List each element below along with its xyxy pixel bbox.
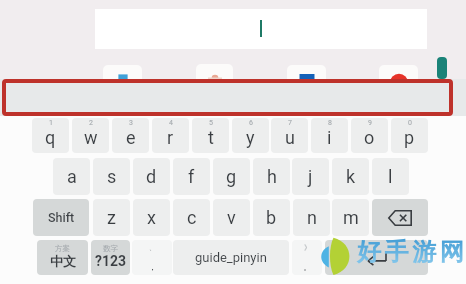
button[interactable]: h (253, 158, 290, 195)
button[interactable]: 、 (132, 240, 172, 275)
staticText: e (126, 127, 136, 148)
staticText: m (343, 207, 359, 228)
staticText: i (327, 127, 332, 148)
staticText: ， (148, 261, 157, 272)
staticText: 》 (304, 243, 311, 252)
button[interactable] (325, 240, 428, 275)
staticText: h (267, 166, 277, 187)
button[interactable]: g (213, 158, 250, 195)
button[interactable]: x (133, 199, 170, 236)
staticText: f (188, 166, 195, 187)
button[interactable]: s (93, 158, 130, 195)
staticText: l (388, 166, 393, 187)
button[interactable]: App 4 (379, 65, 418, 83)
button[interactable]: Backspace (372, 199, 428, 236)
button[interactable]: j (292, 158, 329, 195)
staticText: s (107, 166, 117, 187)
staticText: u (285, 127, 295, 148)
staticText: y (246, 127, 255, 148)
staticText: 、 (149, 243, 156, 252)
button[interactable]: v (213, 199, 250, 236)
staticText: 8 (328, 119, 332, 127)
button[interactable]: App 2 (196, 64, 233, 82)
button[interactable]: k (332, 158, 369, 195)
staticText: 7 (288, 119, 292, 127)
button[interactable]: a (53, 158, 90, 195)
button[interactable]: App 1 (103, 65, 142, 83)
button[interactable]: 8 (311, 118, 348, 153)
staticText: 9 (368, 119, 372, 127)
staticText: 5 (209, 119, 213, 127)
staticText: ?123 (95, 253, 127, 269)
staticText: 3 (129, 119, 133, 127)
button[interactable]: f (173, 158, 210, 195)
staticText: 数字 (103, 244, 118, 253)
staticText: o (364, 127, 375, 148)
button[interactable]: n (293, 199, 330, 236)
button[interactable]: 数字 (91, 240, 130, 275)
staticText: t (208, 127, 214, 148)
staticText: n (307, 207, 317, 228)
button[interactable]: 0 (391, 118, 428, 153)
staticText: g (226, 166, 237, 187)
button[interactable]: 方案 (37, 240, 88, 275)
staticText: p (404, 127, 415, 148)
button[interactable]: z (93, 199, 130, 236)
button[interactable]: l (372, 158, 409, 195)
staticText: c (187, 207, 197, 228)
button[interactable]: 6 (232, 118, 269, 153)
staticText: 。 (303, 261, 312, 272)
button[interactable]: App 3 (287, 65, 326, 83)
staticText: 4 (169, 119, 173, 127)
button[interactable]: m (332, 199, 369, 236)
button[interactable]: guide_pinyin (173, 240, 289, 275)
staticText: guide_pinyin (195, 250, 267, 265)
staticText: 2 (89, 119, 93, 127)
staticText: z (107, 207, 116, 228)
button[interactable]: 1 (32, 118, 69, 153)
button[interactable]: 》 (292, 240, 322, 275)
button[interactable]: 2 (72, 118, 109, 153)
button[interactable]: 9 (351, 118, 388, 153)
staticText: q (45, 127, 56, 148)
staticText: 1 (49, 119, 53, 127)
button[interactable]: 3 (112, 118, 149, 153)
button[interactable]: 5 (192, 118, 229, 153)
staticText: k (346, 166, 356, 187)
button[interactable]: 7 (271, 118, 308, 153)
button[interactable]: Shift (33, 199, 89, 236)
staticText: Shift (48, 210, 75, 225)
staticText: x (147, 207, 156, 228)
button[interactable] (0, 79, 466, 116)
staticText: w (84, 127, 98, 148)
button[interactable]: 4 (152, 118, 189, 153)
button[interactable] (95, 9, 427, 49)
staticText: v (227, 207, 236, 228)
staticText: 中文 (50, 253, 76, 269)
staticText: 6 (249, 119, 253, 127)
staticText: b (266, 207, 277, 228)
button[interactable]: d (133, 158, 170, 195)
staticText: d (146, 166, 157, 187)
staticText: 好手游网 (357, 237, 466, 267)
staticText: j (308, 166, 313, 187)
button[interactable]: b (253, 199, 290, 236)
staticText: a (67, 166, 77, 187)
staticText: 方案 (55, 244, 70, 253)
staticText: r (167, 127, 174, 148)
button[interactable]: c (173, 199, 210, 236)
staticText: 0 (408, 119, 412, 127)
